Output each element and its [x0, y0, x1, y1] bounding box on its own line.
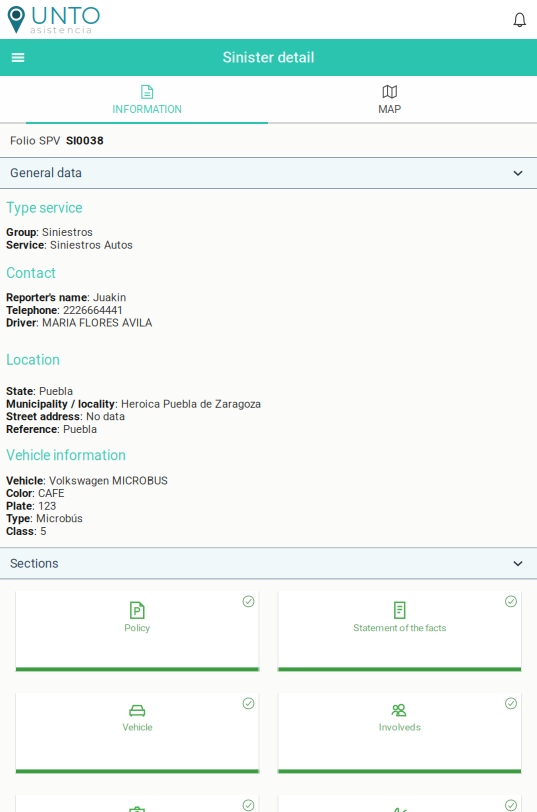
staticText: SI0038	[66, 134, 104, 147]
staticText: Reference	[6, 423, 57, 436]
staticText: :	[36, 226, 42, 239]
staticText: Siniestros Autos	[50, 238, 133, 251]
staticText: Contact	[6, 265, 56, 281]
staticText: State	[6, 385, 33, 398]
staticText: Street address	[6, 410, 80, 423]
staticText: Policy	[124, 622, 150, 634]
staticText: Volkswagen MICROBUS	[49, 474, 168, 487]
staticText: :	[32, 487, 38, 500]
staticText: :	[44, 238, 50, 251]
staticText: 2226664441	[63, 304, 123, 317]
staticText: Siniestros	[42, 226, 93, 239]
staticText: :	[87, 291, 93, 304]
staticText: Color	[6, 487, 32, 500]
staticText: :	[36, 316, 42, 329]
staticText: Municipality / locality	[6, 397, 115, 410]
button[interactable]: Notifications	[514, 11, 526, 27]
staticText: :	[57, 423, 63, 436]
staticText: Sinister detail	[222, 49, 314, 66]
staticText: Folio SPV	[10, 134, 66, 147]
staticText: Type service	[6, 200, 82, 216]
staticText: Sections	[10, 556, 58, 571]
staticText: Class	[6, 525, 34, 538]
staticText: 123	[38, 499, 56, 512]
staticText: :	[32, 499, 38, 512]
staticText: Reporter's name	[6, 291, 87, 304]
staticText: CAFE	[38, 487, 64, 500]
staticText: Service	[6, 238, 44, 251]
staticText: Puebla	[63, 423, 97, 436]
staticText: :	[57, 304, 63, 317]
staticText: Group	[6, 226, 36, 239]
staticText: Statement of the facts	[353, 622, 446, 634]
staticText: Microbús	[36, 512, 83, 525]
staticText: Heroica Puebla de Zaragoza	[121, 397, 261, 410]
staticText: Location	[6, 352, 60, 368]
button[interactable]: Sections	[0, 547, 537, 579]
staticText: MAP	[378, 103, 401, 115]
button[interactable]: Statement of the facts	[277, 591, 522, 671]
staticText: MARIA FLORES AVILA	[42, 316, 152, 329]
button[interactable]: General data	[0, 157, 537, 189]
staticText: UNTO	[30, 1, 101, 30]
button[interactable]: INFORMATION	[26, 76, 268, 123]
staticText: Telephone	[6, 304, 57, 317]
button[interactable]: Vehicle	[15, 693, 259, 773]
button[interactable]: Involveds	[277, 693, 522, 773]
button[interactable]: Policy	[15, 591, 259, 671]
staticText: :	[34, 525, 40, 538]
staticText: a s i s t e n c i a	[30, 24, 91, 36]
staticText: Type	[6, 512, 30, 525]
button[interactable]: Signature	[277, 795, 522, 812]
staticText: Puebla	[39, 385, 73, 398]
staticText: INFORMATION	[112, 103, 182, 115]
staticText: Juakin	[93, 291, 126, 304]
staticText: :	[80, 410, 86, 423]
button[interactable]: Menu	[0, 42, 36, 72]
staticText: General data	[10, 166, 82, 180]
staticText: Vehicle	[122, 721, 152, 733]
staticText: Vehicle	[6, 474, 43, 487]
staticText: :	[115, 397, 121, 410]
button[interactable]: MAP	[268, 76, 511, 123]
staticText: 5	[40, 525, 46, 538]
staticText: :	[43, 474, 49, 487]
staticText: Driver	[6, 316, 36, 329]
staticText: :	[33, 385, 39, 398]
staticText: No data	[86, 410, 125, 423]
staticText: Vehicle information	[6, 447, 126, 464]
staticText: :	[30, 512, 36, 525]
staticText: Involveds	[379, 721, 421, 733]
staticText: Plate	[6, 499, 32, 512]
button[interactable]: Photos	[15, 795, 259, 812]
